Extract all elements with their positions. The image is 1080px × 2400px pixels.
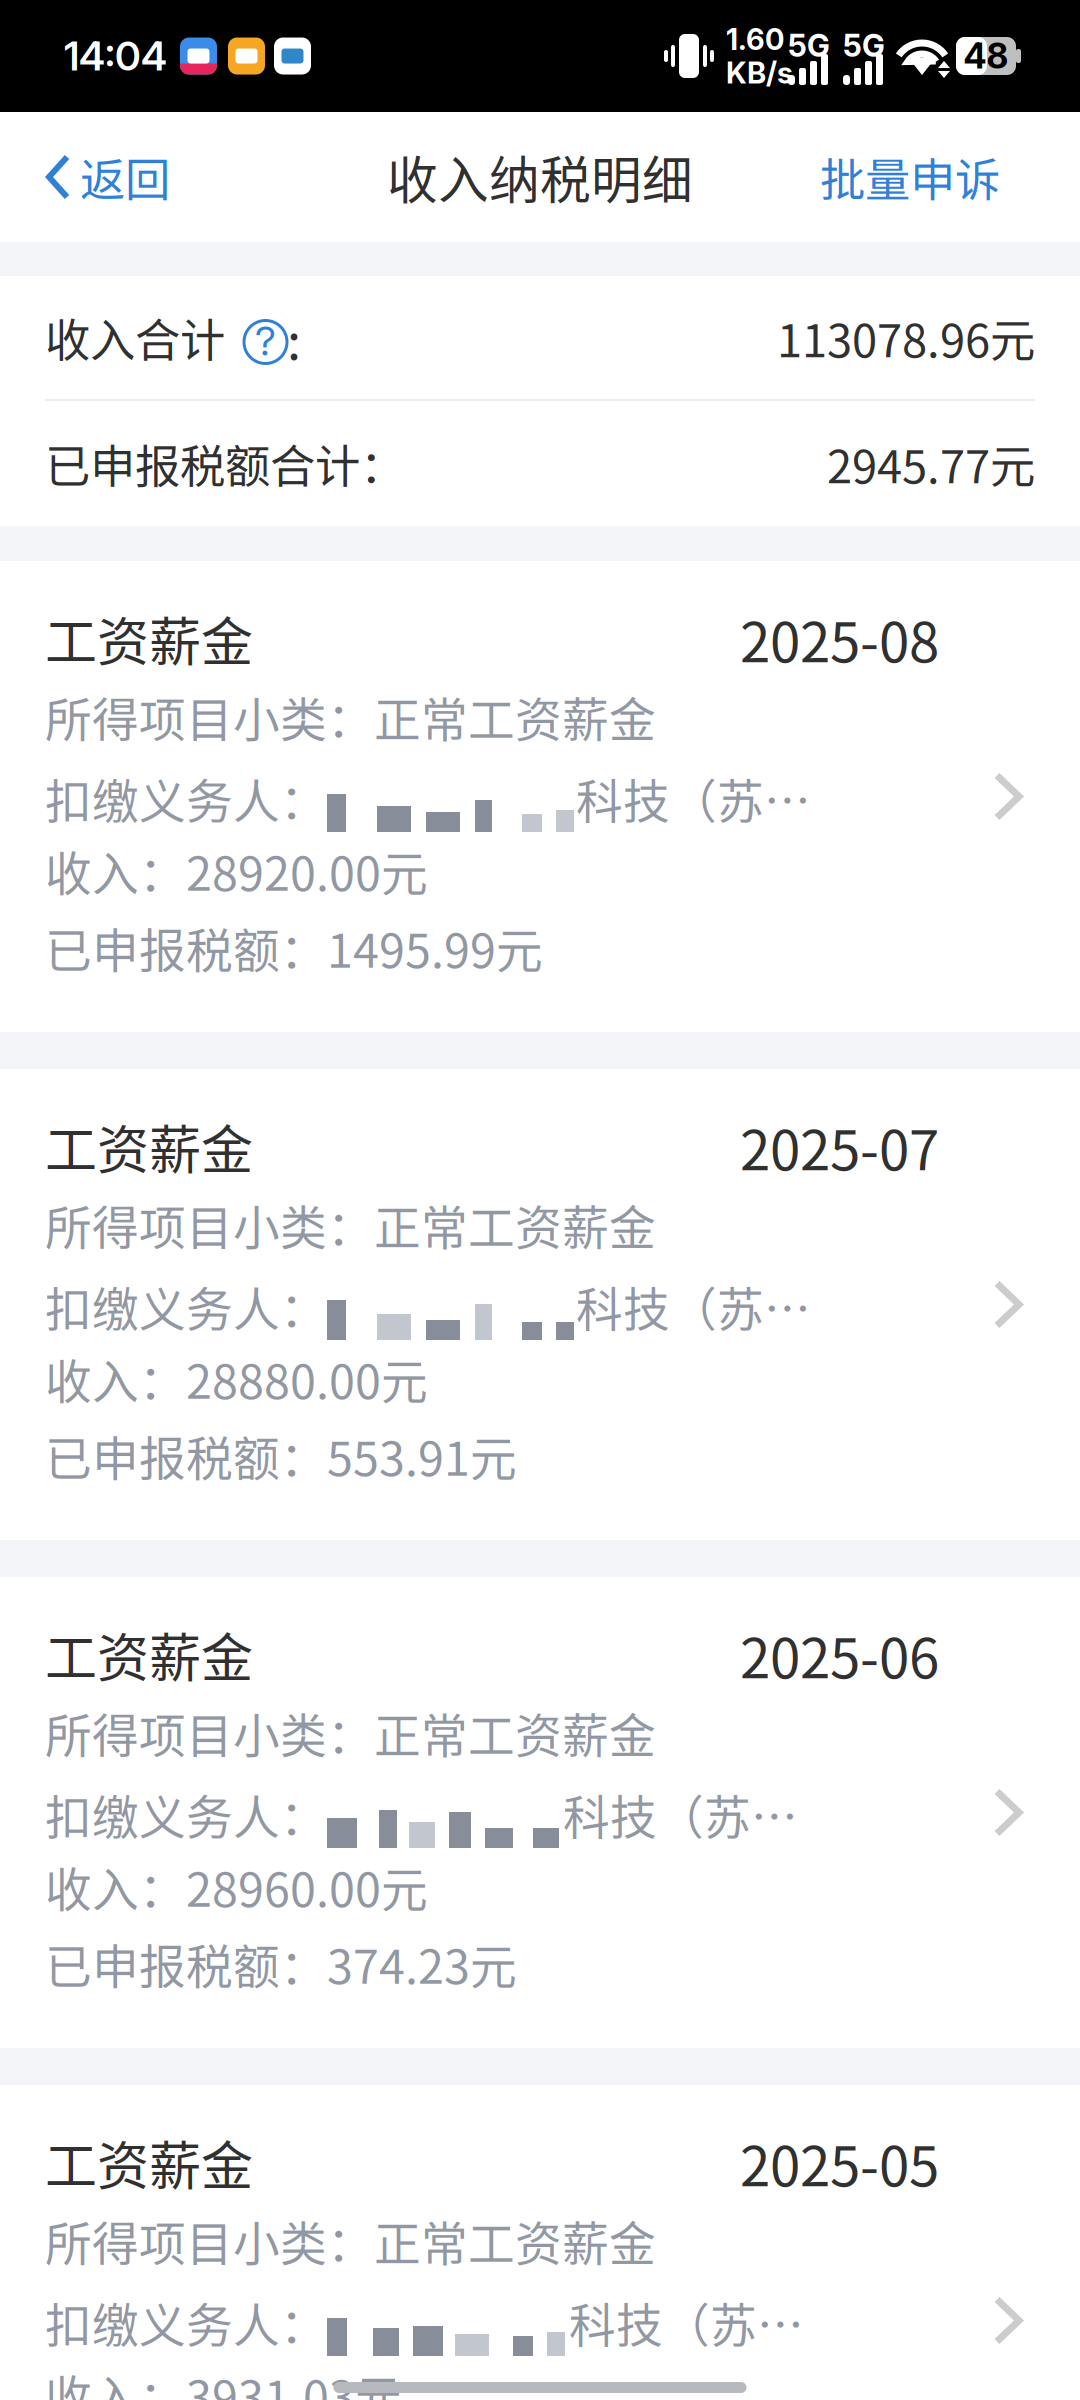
staticText: 所得项目小类：正常工资薪金 [45,1699,656,1766]
staticText: 已申报税额：374.23元 [45,1930,517,1997]
staticText: 2025-05 [740,2123,939,2202]
staticText: 1.60 [726,21,784,57]
button[interactable]: 返回 [0,112,198,242]
staticText: 5G [843,27,885,64]
staticText: 所得项目小类：正常工资薪金 [45,1191,656,1258]
button[interactable]: 工资薪金 [0,1069,1080,1540]
staticText: 5G [788,27,830,64]
staticText: : [287,301,301,374]
staticText: 工资薪金 [45,601,253,676]
staticText: 科技（苏… [563,1780,798,1848]
staticText: 2025-08 [740,599,939,678]
staticText: 工资薪金 [45,1109,253,1184]
staticText: 批量申诉 [820,144,1000,210]
staticText: 科技（苏… [569,2288,804,2356]
staticText: 收入：28960.00元 [45,1853,428,1920]
staticText: 已申报税额合计： [45,431,405,496]
staticText: 所得项目小类：正常工资薪金 [45,683,656,750]
staticText: 2025-06 [740,1615,939,1694]
button[interactable]: 批量申诉 [792,112,1080,242]
button[interactable]: 工资薪金 [0,2085,1080,2400]
staticText: 所得项目小类：正常工资薪金 [45,2207,656,2274]
staticText: 科技（苏… [576,1272,811,1340]
staticText: ? [255,317,276,365]
staticText: 收入合计 [45,305,225,370]
staticText: 48 [963,35,1008,77]
button[interactable]: 工资薪金 [0,561,1080,1032]
staticText: 科技（苏… [576,764,811,832]
staticText: 返回 [80,144,170,210]
button[interactable]: 工资薪金 [0,1577,1080,2048]
staticText: 2025-07 [740,1107,939,1186]
staticText: 扣缴义务人： [45,1272,327,1340]
staticText: 2945.77元 [827,431,1035,496]
staticText: 工资薪金 [45,1617,253,1692]
staticText: 已申报税额：553.91元 [45,1422,517,1489]
staticText: 工资薪金 [45,2125,253,2200]
staticText: 113078.96元 [777,305,1035,370]
staticText: 扣缴义务人： [45,1780,327,1848]
staticText: 收入：28920.00元 [45,837,428,904]
staticText: 14:04 [64,32,167,80]
staticText: 扣缴义务人： [45,764,327,832]
staticText: 收入：3931.03元 [45,2361,402,2400]
staticText: 已申报税额：1495.99元 [45,914,543,981]
staticText: KB/s [726,55,793,90]
staticText: 收入纳税明细 [387,140,693,214]
staticText: 收入：28880.00元 [45,1345,428,1412]
staticText: 扣缴义务人： [45,2288,327,2356]
